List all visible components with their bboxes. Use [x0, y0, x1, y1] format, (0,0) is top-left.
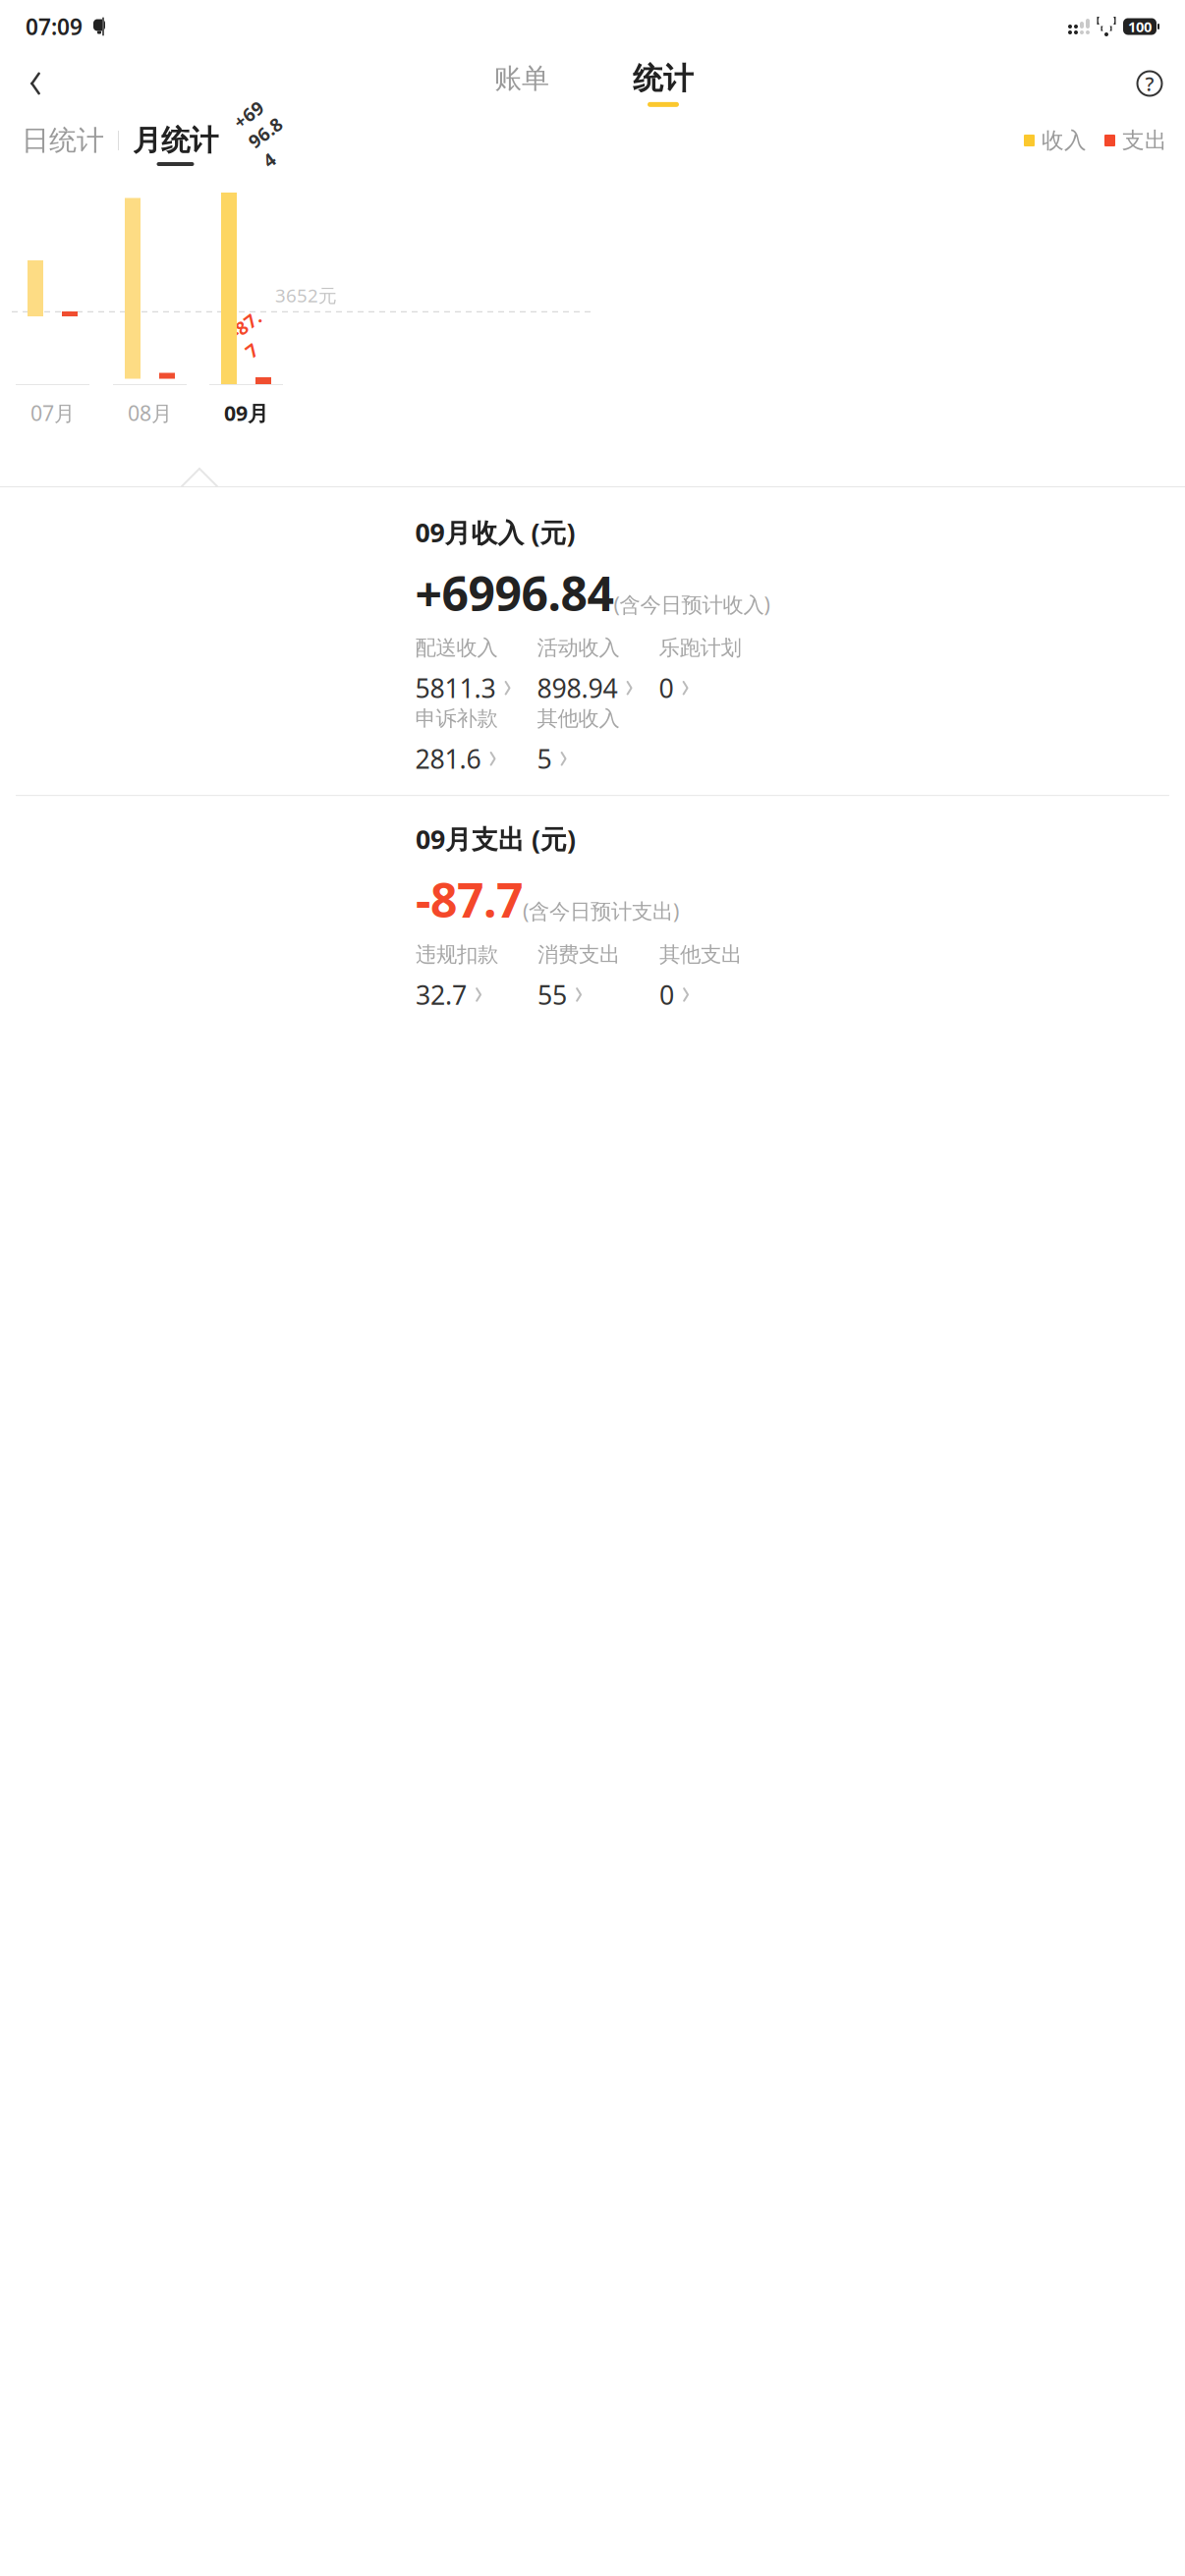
staticText: 09月收入 (元)	[415, 515, 575, 550]
button[interactable]: 违规扣款	[416, 948, 526, 1005]
staticText: 支出	[1122, 127, 1167, 154]
button[interactable]: 月统计	[129, 123, 222, 166]
staticText: 账单	[494, 62, 549, 95]
button[interactable]: 日统计	[18, 124, 108, 165]
staticText: 08月	[128, 399, 172, 427]
staticText: (含今日预计支出)	[523, 897, 679, 925]
button[interactable]: 统计	[616, 56, 710, 111]
button[interactable]: 其他支出	[659, 948, 769, 1005]
staticText: 5811.3	[415, 671, 496, 705]
staticText: 活动收入	[537, 635, 620, 661]
staticText: 09月支出 (元)	[416, 822, 576, 856]
staticText: 100	[1128, 17, 1152, 36]
staticText: (含今日预计收入)	[614, 590, 770, 618]
staticText: 898.94	[537, 671, 618, 705]
staticText: 0	[659, 977, 674, 1012]
staticText: 0	[659, 671, 674, 705]
button[interactable]: 账单	[475, 56, 569, 111]
staticText: ?	[1145, 70, 1154, 97]
staticText: 55	[537, 977, 567, 1012]
staticText: 日统计	[22, 124, 104, 157]
staticText: -87.7	[237, 310, 269, 359]
staticText: 其他支出	[659, 942, 742, 967]
staticText: 收入	[1042, 127, 1087, 154]
staticText: 32.7	[416, 977, 467, 1012]
staticText: 配送收入	[415, 635, 498, 661]
staticText: 281.6	[415, 741, 481, 776]
button[interactable]: 申诉补款	[415, 712, 525, 769]
staticText: 07月	[30, 399, 75, 427]
staticText: 其他收入	[537, 706, 620, 731]
button[interactable]: 帮助	[1124, 58, 1175, 109]
staticText: 违规扣款	[416, 942, 498, 967]
staticText: 消费支出	[537, 942, 620, 967]
button[interactable]: 乐跑计划	[659, 642, 769, 699]
button[interactable]: 消费支出	[537, 948, 648, 1005]
staticText: 乐跑计划	[659, 635, 741, 661]
staticText: -87.7	[416, 868, 523, 931]
staticText: 统计	[633, 60, 694, 97]
staticText: 3652元	[275, 283, 337, 307]
staticText: 09月	[224, 399, 268, 427]
staticText: 申诉补款	[415, 706, 498, 731]
button[interactable]: 返回	[10, 58, 61, 109]
staticText: 月统计	[133, 123, 218, 158]
button[interactable]: 活动收入	[537, 642, 647, 699]
staticText: 07:09	[26, 12, 83, 41]
staticText: +6996.84	[415, 561, 614, 624]
button[interactable]: 其他收入	[537, 712, 647, 769]
button[interactable]: 配送收入	[415, 642, 525, 699]
staticText: +6996.84	[247, 96, 284, 169]
staticText: 5	[537, 741, 552, 776]
